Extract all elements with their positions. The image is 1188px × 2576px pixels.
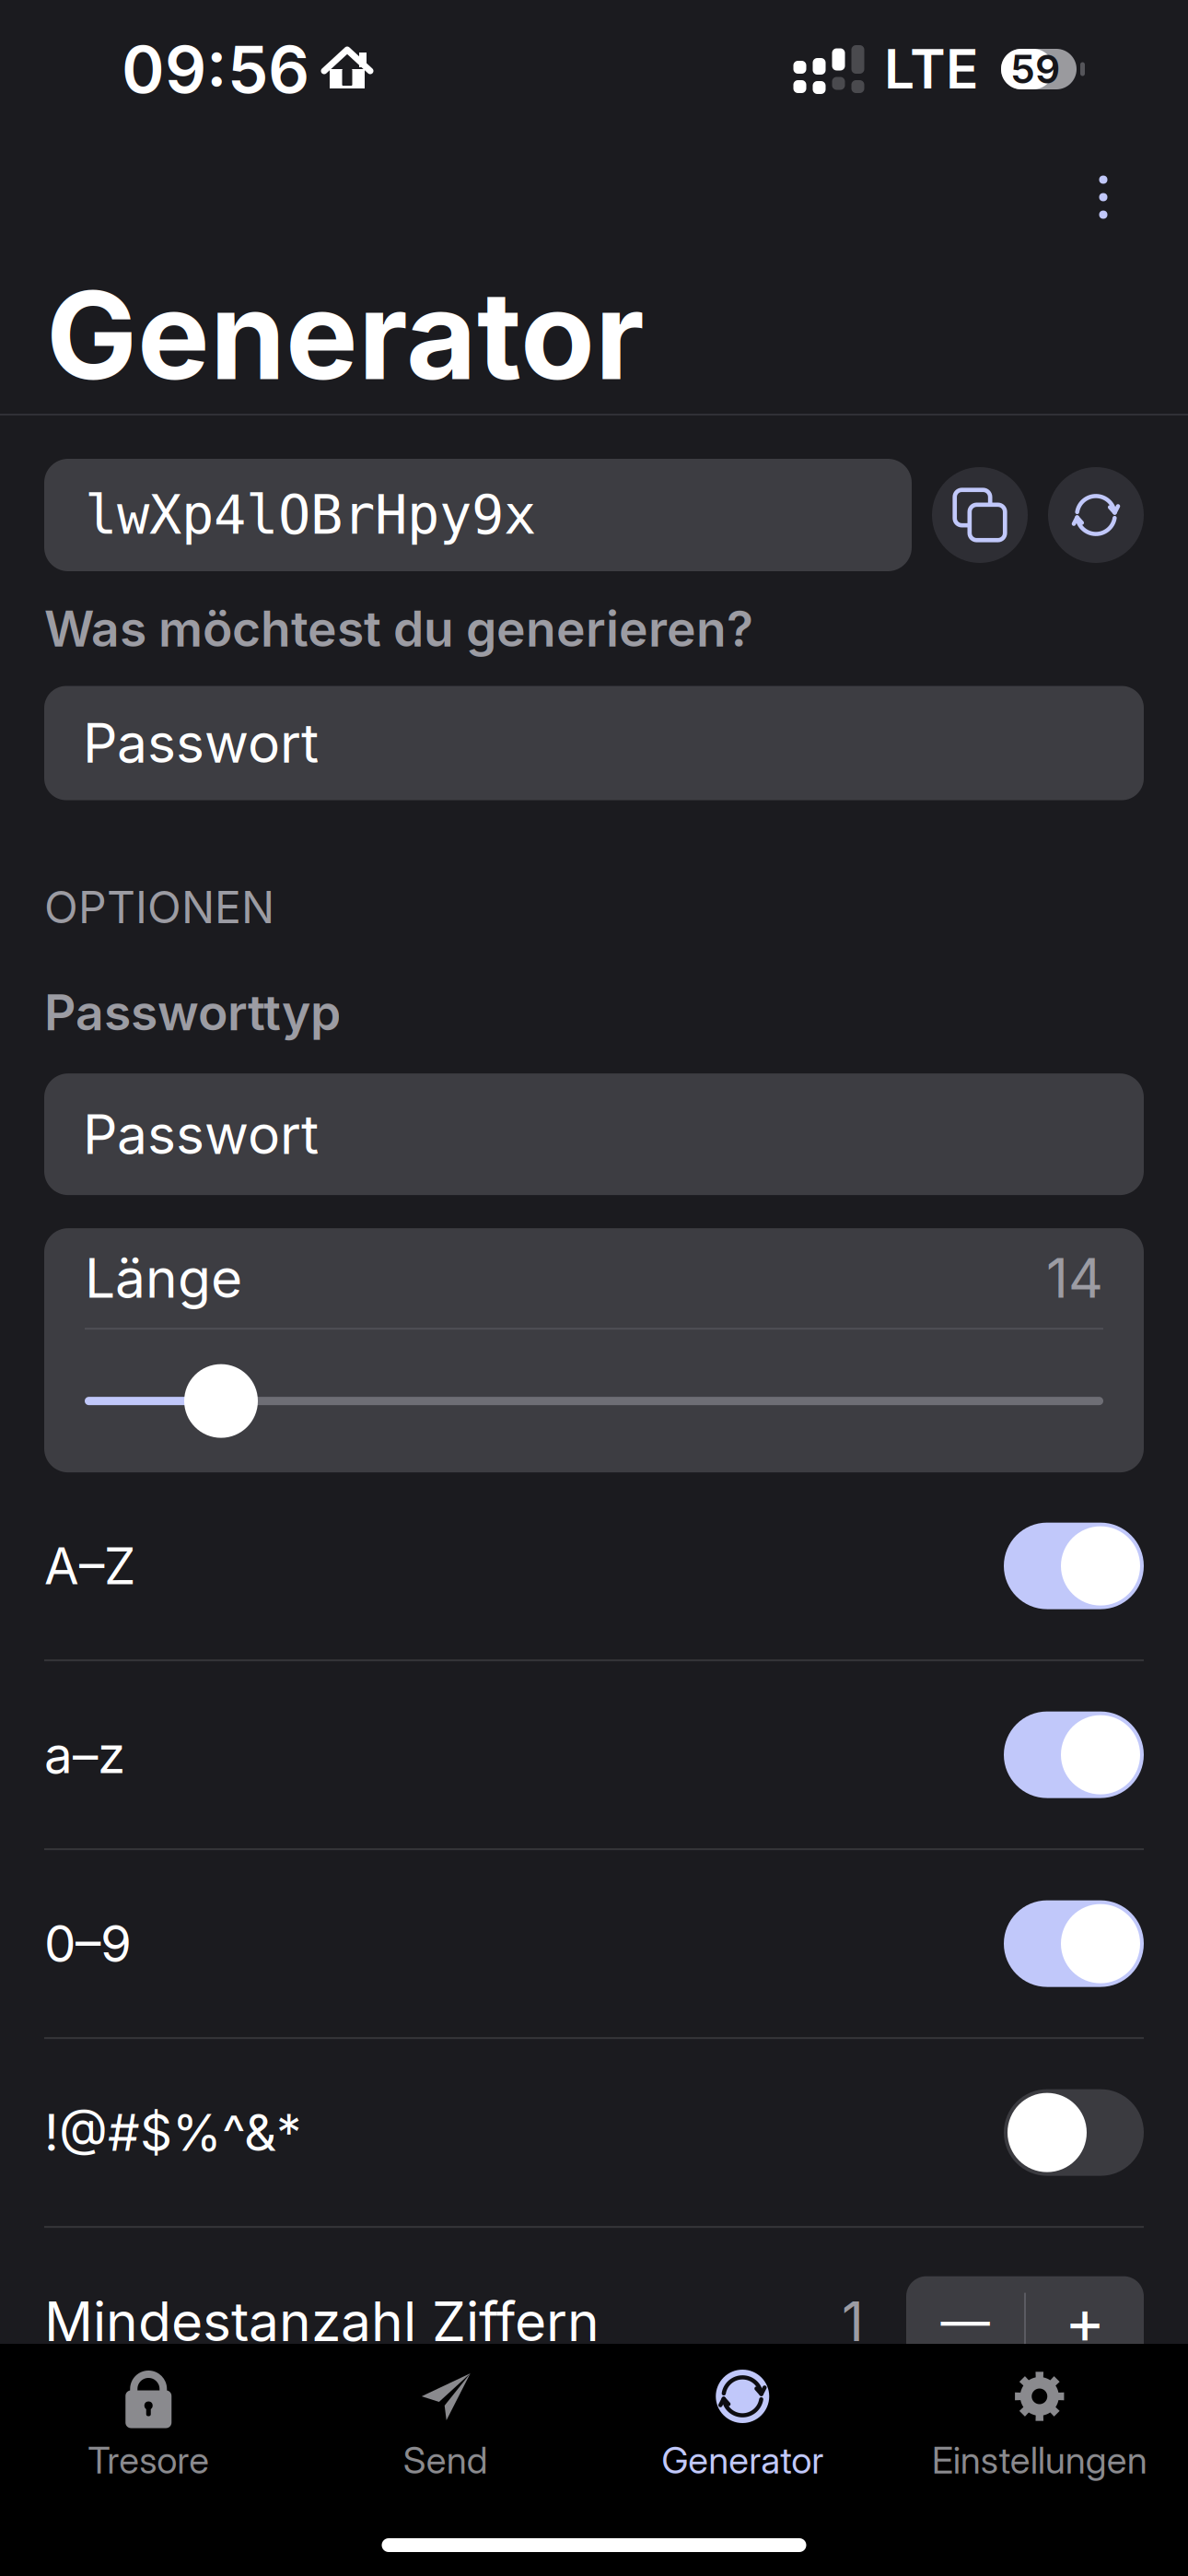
button[interactable]: a–z: [0, 1661, 1188, 1848]
button[interactable]: Passwort: [0, 658, 1188, 800]
button[interactable]: 0–9: [0, 1850, 1188, 2037]
staticText: A–Z: [44, 1535, 135, 1596]
button[interactable]: More options: [1061, 155, 1146, 240]
staticText: —: [941, 2292, 990, 2351]
button[interactable]: Passwort: [0, 1042, 1188, 1195]
staticText: Send: [403, 2438, 488, 2482]
button[interactable]: A–Z: [0, 1472, 1188, 1659]
staticText: +: [1065, 2284, 1105, 2359]
staticText: a–z: [44, 1724, 125, 1785]
staticText: lwXp4lOBrHpy9x: [85, 484, 536, 547]
button[interactable]: Increase minimum digits: [1026, 2276, 1144, 2366]
staticText: Passwort: [83, 710, 319, 776]
staticText: 09:56: [122, 30, 309, 108]
button[interactable]: Tresore: [0, 2368, 297, 2482]
staticText: Mindestanzahl Ziffern: [44, 2289, 600, 2354]
staticText: Passwort: [83, 1102, 319, 1167]
staticText: Einstellungen: [932, 2438, 1147, 2482]
button[interactable]: Generate new password: [1048, 467, 1144, 563]
staticText: 14: [1046, 1245, 1103, 1311]
staticText: Generator: [46, 261, 645, 408]
staticText: 1: [842, 2289, 864, 2354]
staticText: 0–9: [44, 1913, 132, 1974]
staticText: !@#$%^&*: [44, 2102, 301, 2163]
staticText: LTE: [884, 36, 979, 102]
button[interactable]: Generator: [594, 2368, 891, 2482]
staticText: Passworttyp: [44, 983, 341, 1042]
button[interactable]: Decrease minimum digits: [906, 2276, 1024, 2366]
staticText: Länge: [85, 1245, 242, 1311]
button[interactable]: Copy password: [932, 467, 1028, 563]
button[interactable]: Send: [297, 2368, 594, 2482]
staticText: Was möchtest du generieren?: [44, 599, 753, 658]
staticText: OPTIONEN: [44, 880, 274, 934]
staticText: Generator: [661, 2438, 823, 2482]
button[interactable]: !@#$%^&*: [0, 2039, 1188, 2226]
staticText: Tresore: [88, 2438, 209, 2482]
button[interactable]: Einstellungen: [891, 2368, 1188, 2482]
staticText: 59: [1010, 45, 1060, 93]
